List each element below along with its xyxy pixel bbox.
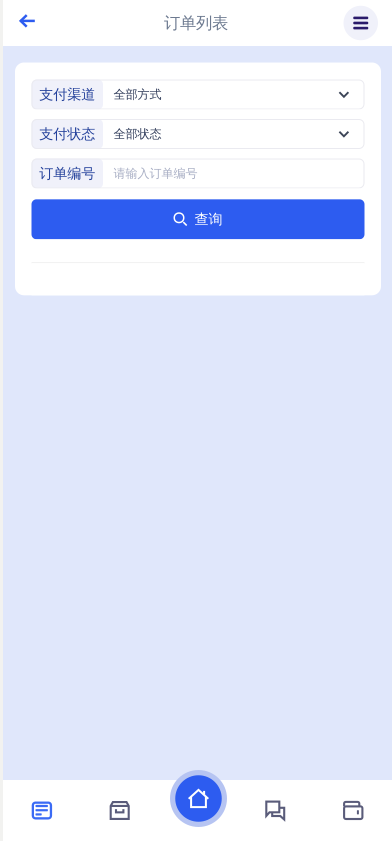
button[interactable]: Wallet — [314, 780, 392, 841]
staticText: 订单编号 — [39, 165, 95, 182]
staticText: 支付渠道 — [39, 86, 95, 103]
staticText: 全部方式 — [113, 87, 161, 102]
button[interactable]: 订单编号 — [31, 158, 364, 188]
staticText: 支付状态 — [39, 125, 95, 143]
button[interactable]: Back — [0, 0, 55, 46]
button[interactable]: 查询 — [31, 199, 364, 239]
button[interactable]: Messages — [236, 780, 314, 841]
staticText: 请输入订单编号 — [113, 166, 197, 181]
staticText: 查询 — [194, 210, 222, 228]
button[interactable]: 支付渠道 — [31, 79, 364, 109]
staticText: 全部状态 — [113, 126, 161, 142]
button[interactable]: Archive — [81, 780, 159, 841]
button[interactable]: Orders — [3, 780, 81, 841]
button[interactable]: Menu — [343, 6, 378, 40]
staticText: 订单列表 — [164, 13, 228, 33]
button[interactable]: Home — [170, 770, 227, 827]
button[interactable]: 支付状态 — [31, 119, 364, 149]
